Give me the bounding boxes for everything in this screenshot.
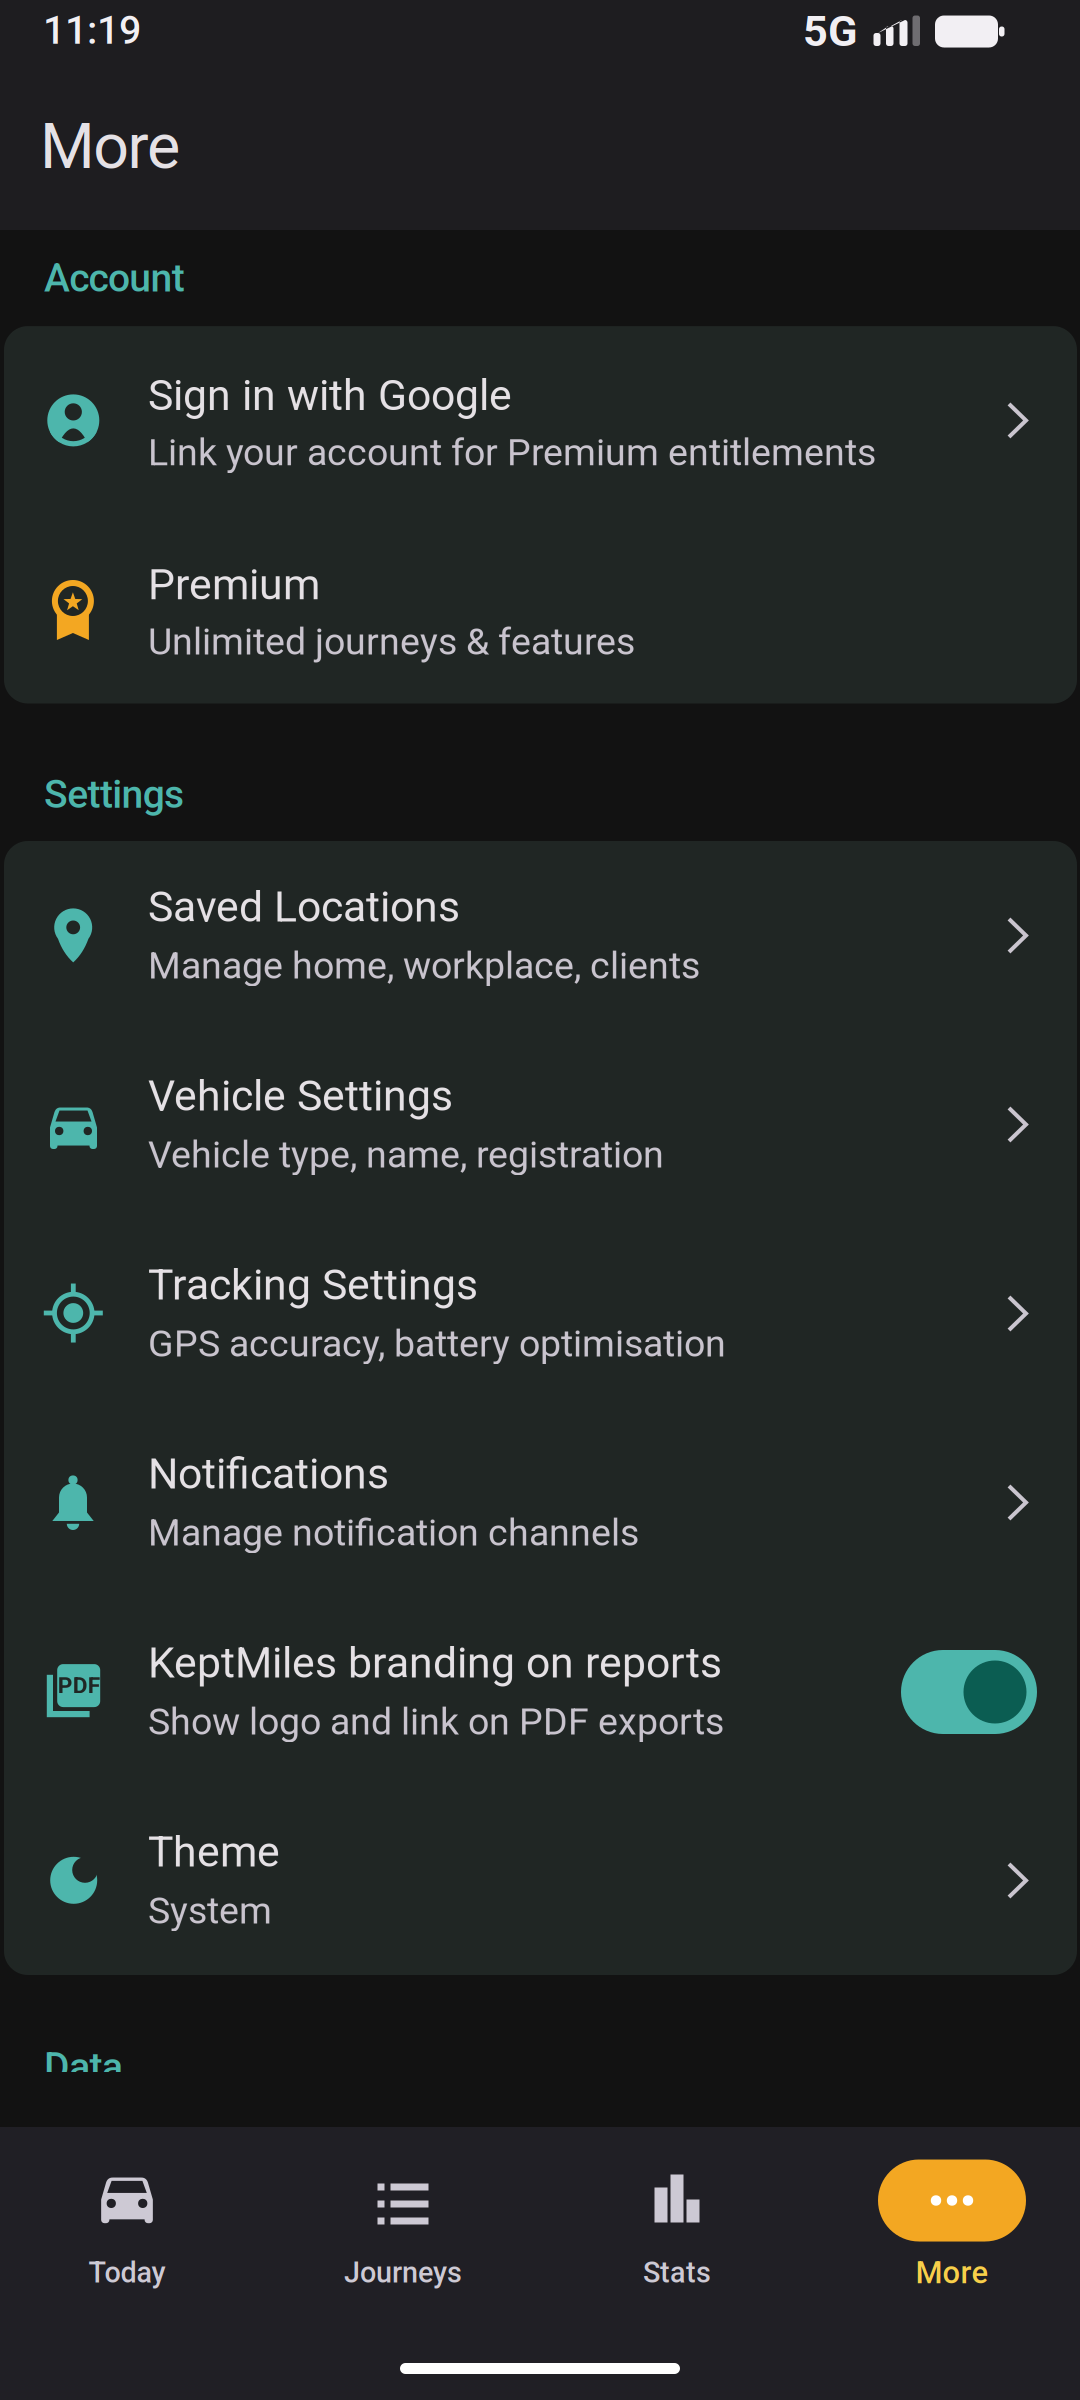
staticText: GPS accuracy, battery optimisation [148, 1322, 726, 1366]
staticText: Vehicle Settings [148, 1071, 453, 1121]
staticText: Tracking Settings [148, 1260, 478, 1310]
staticText: More [40, 110, 180, 183]
staticText: Theme [148, 1827, 280, 1877]
staticText: Journeys [344, 2256, 462, 2289]
staticText: Link your account for Premium entitlemen… [148, 430, 876, 474]
staticText: Premium [148, 560, 320, 610]
button[interactable]: Vehicle Settings [4, 1030, 1077, 1219]
staticText: Manage notification channels [148, 1511, 639, 1555]
staticText: Account [44, 255, 185, 301]
staticText: Notifications [148, 1449, 389, 1499]
staticText: Stats [643, 2256, 711, 2289]
staticText: Manage home, workplace, clients [148, 944, 700, 988]
staticText: Show logo and link on PDF exports [148, 1700, 724, 1744]
staticText: 5G [803, 6, 858, 57]
staticText: Today [88, 2256, 165, 2289]
button[interactable]: PDF [4, 1597, 1077, 1786]
staticText: More [915, 2254, 988, 2291]
staticText: 11:19 [43, 7, 141, 53]
button[interactable]: Saved Locations [4, 841, 1077, 1030]
staticText: Data [44, 2044, 123, 2090]
staticText: Saved Locations [148, 882, 460, 932]
staticText: Vehicle type, name, registration [148, 1133, 664, 1177]
button[interactable]: Notifications [4, 1408, 1077, 1597]
staticText: PDF [58, 1672, 100, 1699]
staticText: Sign in with Google [148, 370, 512, 420]
button[interactable]: Today [0, 2127, 270, 2400]
button[interactable]: Sign in with Google [4, 326, 1077, 515]
button[interactable]: Journeys [270, 2127, 540, 2400]
button[interactable]: Premium [4, 515, 1077, 703]
staticText: KeptMiles branding on reports [148, 1638, 722, 1688]
staticText: System [148, 1889, 272, 1933]
staticText: Unlimited journeys & features [148, 620, 635, 664]
button[interactable]: Tracking Settings [4, 1219, 1077, 1408]
button[interactable]: Stats [540, 2127, 810, 2400]
staticText: Settings [44, 771, 184, 817]
button[interactable]: Theme [4, 1786, 1077, 1975]
button[interactable]: More [810, 2127, 1080, 2400]
